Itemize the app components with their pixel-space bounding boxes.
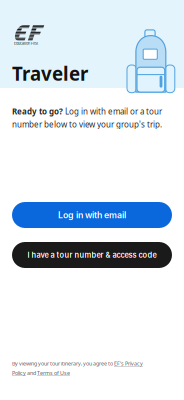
staticText: Education First bbox=[14, 41, 38, 46]
button[interactable]: I have a tour number & access code bbox=[12, 242, 172, 268]
staticText: I have a tour number & access code bbox=[27, 250, 156, 259]
button[interactable]: Log in with email bbox=[12, 202, 172, 228]
staticText: Ready to go? Log in with email or a tour… bbox=[12, 106, 162, 130]
staticText: By viewing your tour itinerary, you agre… bbox=[12, 360, 143, 376]
staticText: Traveler bbox=[12, 61, 88, 86]
staticText: Log in with email bbox=[58, 210, 126, 220]
